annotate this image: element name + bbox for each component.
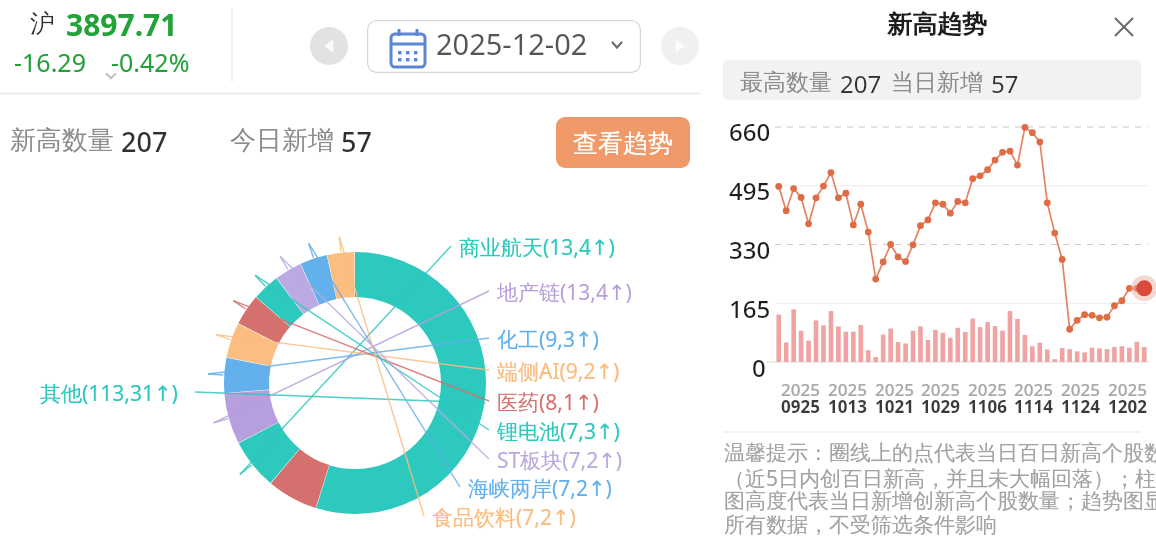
button[interactable]: 端侧AI(9,2↑) [497, 357, 667, 383]
staticText: 1114 [1014, 395, 1053, 418]
button[interactable] [367, 20, 641, 73]
staticText: 1013 [828, 395, 867, 418]
staticText: 化工(9,3↑) [497, 325, 599, 351]
button[interactable]: 医药(8,1↑) [497, 388, 633, 414]
button[interactable]: 地产链(13,4↑) [497, 278, 667, 304]
staticText: 1202 [1108, 395, 1147, 418]
staticText: 最高数量 [740, 68, 832, 97]
staticText: 0925 [781, 395, 820, 418]
staticText: 2025 [781, 378, 820, 401]
staticText: 所有数据，不受筛选条件影响 [724, 512, 997, 537]
staticText: 温馨提示：圈线上的点代表当日百日新高个股数量 [724, 440, 1156, 466]
staticText: 495 [729, 174, 771, 207]
button[interactable]: 化工(9,3↑) [497, 325, 633, 351]
staticText: 其他(113,31↑) [40, 379, 178, 405]
staticText: 3897.71 [66, 4, 178, 45]
staticText: 锂电池(7,3↑) [497, 417, 620, 443]
button[interactable]: Close [1103, 6, 1145, 48]
staticText: 沪 [30, 8, 55, 39]
staticText: -16.29 [14, 45, 86, 79]
staticText: 当日新增 [891, 68, 983, 97]
staticText: 2025 [921, 378, 960, 401]
staticText: 0 [752, 351, 766, 384]
button[interactable]: 查看趋势 [556, 117, 690, 168]
button[interactable]: ST板块(7,2↑) [497, 446, 667, 472]
staticText: 2025 [1108, 378, 1147, 401]
staticText: 2025 [828, 378, 867, 401]
staticText: ST板块(7,2↑) [497, 446, 623, 472]
staticText: 330 [729, 233, 771, 266]
staticText: 57 [341, 123, 372, 160]
button[interactable]: 其他(113,31↑) [40, 379, 192, 405]
button[interactable]: Previous day [310, 27, 348, 65]
staticText: 海峡两岸(7,2↑) [468, 474, 612, 500]
staticText: 医药(8,1↑) [497, 388, 599, 414]
staticText: 165 [729, 292, 771, 325]
staticText: 2025 [1014, 378, 1053, 401]
staticText: 图高度代表当日新增创新高个股数量；趋势图显示 [724, 488, 1156, 514]
staticText: 2025 [968, 378, 1007, 401]
staticText: （近5日内创百日新高，并且未大幅回落）；柱状 [724, 464, 1156, 493]
staticText: 1029 [921, 395, 960, 418]
staticText: 2025 [875, 378, 914, 401]
button[interactable]: 食品饮料(7,2↑) [432, 503, 602, 529]
staticText: 商业航天(13,4↑) [459, 233, 615, 259]
button[interactable]: Next day [661, 27, 699, 65]
staticText: 1124 [1061, 395, 1100, 418]
staticText: 207 [121, 123, 168, 160]
button[interactable]: 商业航天(13,4↑) [459, 233, 646, 259]
staticText: 1106 [968, 395, 1007, 418]
button[interactable]: 海峡两岸(7,2↑) [468, 474, 638, 500]
staticText: 1021 [875, 395, 914, 418]
staticText: -0.42% [111, 45, 190, 79]
staticText: 端侧AI(9,2↑) [497, 357, 620, 383]
staticText: 新高数量 [10, 124, 114, 157]
staticText: 新高趋势 [887, 9, 987, 40]
staticText: 2025-12-02 [436, 24, 588, 63]
staticText: 地产链(13,4↑) [497, 278, 632, 304]
staticText: 查看趋势 [573, 128, 673, 159]
staticText: 食品饮料(7,2↑) [432, 503, 576, 529]
staticText: 今日新增 [230, 124, 334, 157]
staticText: 660 [729, 115, 771, 148]
staticText: 207 [840, 67, 882, 100]
button[interactable]: 锂电池(7,3↑) [497, 417, 650, 443]
staticText: 57 [991, 67, 1019, 100]
staticText: 2025 [1061, 378, 1100, 401]
